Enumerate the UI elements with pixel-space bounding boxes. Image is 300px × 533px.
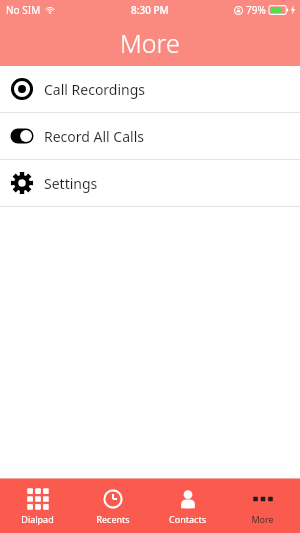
- staticText: Contacts: [169, 513, 206, 525]
- staticText: Record All Calls: [44, 127, 144, 146]
- staticText: Dialpad: [21, 513, 54, 525]
- staticText: Settings: [44, 174, 98, 193]
- button[interactable]: Dialpad: [0, 479, 75, 533]
- button[interactable]: Call Recordings: [0, 66, 300, 112]
- staticText: More: [120, 26, 180, 60]
- button[interactable]: Recents: [75, 479, 150, 533]
- staticText: Call Recordings: [44, 80, 146, 99]
- button[interactable]: More: [225, 479, 300, 533]
- staticText: More: [251, 513, 274, 525]
- staticText: No SIM: [6, 3, 41, 17]
- button[interactable]: Record All Calls: [0, 113, 300, 159]
- button[interactable]: Contacts: [150, 479, 225, 533]
- staticText: 8:30 PM: [131, 3, 169, 17]
- staticText: Recents: [96, 513, 130, 525]
- button[interactable]: Settings: [0, 160, 300, 206]
- staticText: 79%: [246, 3, 266, 17]
